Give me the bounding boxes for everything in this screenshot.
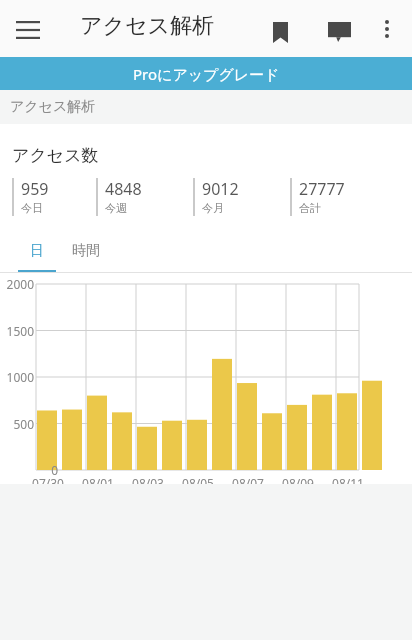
staticText: 27777 [299, 178, 345, 200]
button[interactable]: 時間 [62, 229, 110, 273]
staticText: 合計 [299, 201, 321, 215]
button[interactable]: Proにアップグレード [0, 57, 412, 90]
staticText: アクセス数 [12, 145, 99, 166]
button[interactable]: Bookmark [258, 10, 302, 54]
staticText: 1000 [0, 369, 34, 385]
button[interactable]: 日 [18, 229, 56, 273]
staticText: アクセス解析 [80, 12, 215, 40]
button[interactable]: More options [368, 10, 406, 48]
staticText: 今日 [21, 201, 43, 215]
staticText: 4848 [105, 178, 142, 200]
button[interactable]: Comments [317, 10, 361, 54]
staticText: 時間 [72, 242, 100, 260]
staticText: 08/03 [124, 475, 172, 491]
staticText: 9012 [202, 178, 239, 200]
staticText: 500 [0, 416, 34, 432]
button[interactable]: Menu [8, 10, 48, 50]
staticText: アクセス解析 [10, 98, 96, 116]
staticText: 08/11 [324, 475, 372, 491]
staticText: 08/09 [274, 475, 322, 491]
staticText: 1500 [0, 323, 34, 339]
staticText: 0 [24, 462, 58, 478]
button[interactable]: 9012 [193, 178, 290, 224]
staticText: 959 [21, 178, 49, 200]
button[interactable]: 4848 [96, 178, 193, 224]
staticText: 日 [30, 242, 44, 260]
button[interactable]: 27777 [290, 178, 387, 224]
staticText: Proにアップグレード [133, 64, 280, 84]
staticText: 08/01 [74, 475, 122, 491]
staticText: 08/07 [224, 475, 272, 491]
staticText: 2000 [0, 276, 34, 292]
staticText: 今週 [105, 201, 127, 215]
button[interactable]: 959 [12, 178, 108, 224]
staticText: 08/05 [174, 475, 222, 491]
staticText: 今月 [202, 201, 224, 215]
staticText: 07/30 [24, 475, 72, 491]
